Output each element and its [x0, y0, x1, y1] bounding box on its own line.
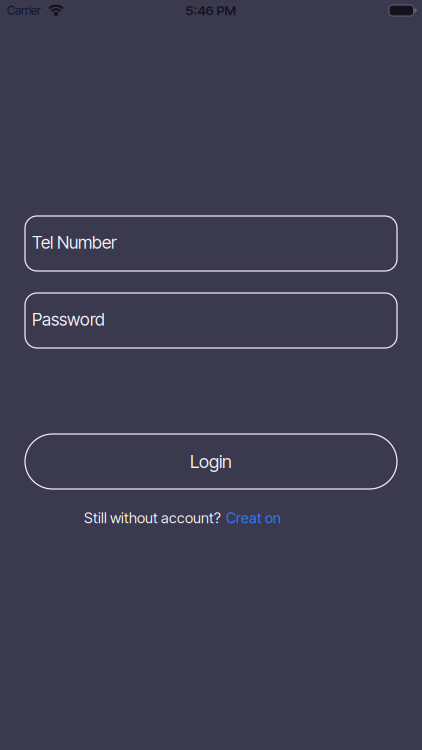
staticText: Password: [32, 309, 105, 330]
staticText: Carrier: [7, 3, 41, 18]
staticText: Creat on: [226, 509, 281, 527]
staticText: Tel Number: [32, 232, 117, 253]
staticText: Still without account?: [84, 509, 221, 527]
staticText: 5:46 PM: [185, 2, 236, 18]
staticText: Login: [190, 451, 232, 472]
